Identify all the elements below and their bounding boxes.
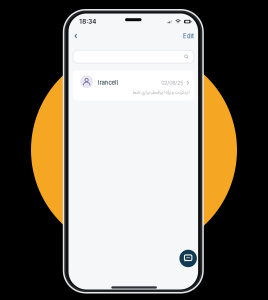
button[interactable]: Edit [183, 30, 194, 42]
button[interactable]: Search [73, 50, 194, 63]
button[interactable]: Back [70, 30, 82, 42]
staticText: اینترنت ویژه ایرانسل برای شما [132, 88, 189, 96]
staticText: 18:34 [79, 18, 96, 25]
button[interactable]: Irancell [73, 70, 194, 100]
button[interactable]: New message [179, 250, 197, 267]
staticText: Irancell [97, 79, 118, 86]
staticText: 02/08/25 [161, 80, 183, 86]
staticText: Edit [183, 32, 194, 40]
